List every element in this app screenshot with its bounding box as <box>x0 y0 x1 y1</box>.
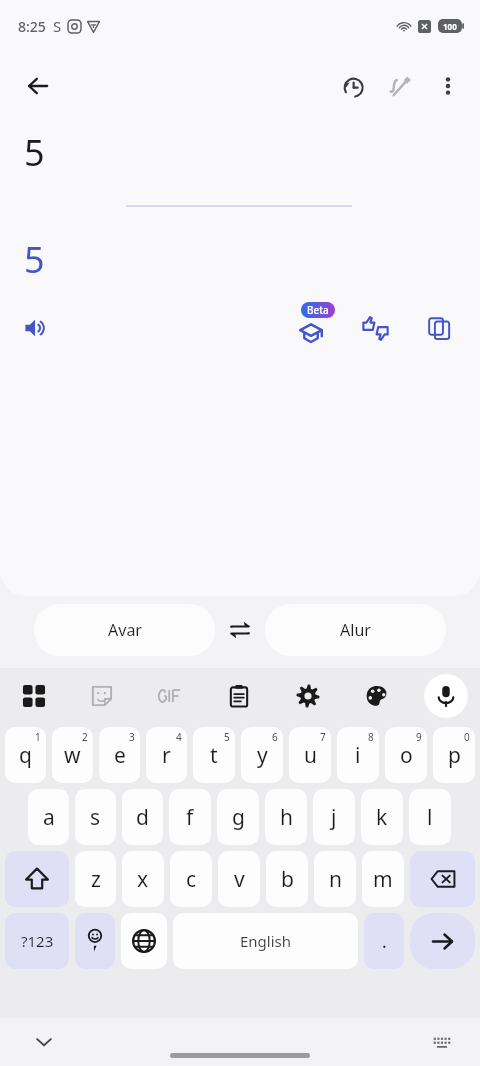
button[interactable]: Avar <box>34 604 215 656</box>
button[interactable]: Voice input <box>424 674 468 718</box>
button[interactable]: More options <box>424 62 472 110</box>
staticText: 1 <box>35 730 41 744</box>
staticText: . <box>382 930 387 953</box>
staticText: 5 <box>24 128 45 177</box>
staticText: 6 <box>272 730 278 744</box>
staticText: 5 <box>224 730 230 744</box>
button[interactable]: Listen <box>14 306 58 350</box>
button[interactable]: y <box>241 727 283 783</box>
button[interactable]: Stickers <box>68 668 136 724</box>
button[interactable]: English <box>173 913 358 969</box>
staticText: 2 <box>82 730 88 744</box>
staticText: 8 <box>368 730 374 744</box>
button[interactable]: Backspace <box>410 851 475 907</box>
button[interactable]: Enter <box>410 913 475 969</box>
button[interactable]: Handwriting <box>376 62 424 110</box>
button[interactable]: u <box>289 727 331 783</box>
staticText: s <box>90 803 101 832</box>
staticText: n <box>329 865 342 894</box>
staticText: q <box>19 741 32 770</box>
staticText: 3 <box>129 730 135 744</box>
staticText: u <box>304 741 317 770</box>
staticText: f <box>186 803 194 832</box>
staticText: p <box>448 741 461 770</box>
staticText: 100 <box>443 21 457 32</box>
button[interactable]: i <box>337 727 379 783</box>
staticText: ?123 <box>21 931 54 951</box>
button[interactable]: Clipboard <box>204 668 273 724</box>
button[interactable]: GIF <box>136 668 204 724</box>
button[interactable]: g <box>217 789 259 845</box>
button[interactable]: f <box>169 789 211 845</box>
staticText: z <box>91 865 101 894</box>
button[interactable]: Back <box>14 62 62 110</box>
staticText: S <box>53 16 62 36</box>
staticText: 4 <box>176 730 182 744</box>
button[interactable]: Emoji <box>75 913 115 969</box>
staticText: g <box>232 803 245 832</box>
button[interactable]: p <box>433 727 475 783</box>
staticText: t <box>210 741 218 770</box>
button[interactable]: b <box>266 851 308 907</box>
staticText: o <box>400 741 413 770</box>
button[interactable]: Settings <box>273 668 342 724</box>
button[interactable]: t <box>193 727 235 783</box>
staticText: c <box>186 865 197 894</box>
staticText: m <box>373 865 393 894</box>
button[interactable]: Themes <box>342 668 411 724</box>
button[interactable]: l <box>409 789 451 845</box>
button[interactable]: Apps <box>0 668 68 724</box>
staticText: k <box>376 803 388 832</box>
staticText: w <box>64 741 81 770</box>
button[interactable]: History <box>328 62 376 110</box>
button[interactable]: o <box>385 727 427 783</box>
staticText: a <box>43 803 55 832</box>
staticText: l <box>427 803 433 832</box>
staticText: 0 <box>464 730 470 744</box>
button[interactable]: Copy <box>416 305 462 351</box>
button[interactable]: Alur <box>265 604 446 656</box>
staticText: x <box>137 865 149 894</box>
staticText: 8:25 <box>18 17 46 36</box>
staticText: b <box>281 865 294 894</box>
staticText: h <box>280 803 293 832</box>
button[interactable]: Keyboard switcher <box>426 1026 458 1058</box>
button[interactable]: h <box>265 789 307 845</box>
staticText: y <box>257 741 268 770</box>
staticText: j <box>331 803 337 832</box>
staticText: 5 <box>24 235 45 284</box>
button[interactable]: d <box>122 789 163 845</box>
button[interactable]: w <box>52 727 93 783</box>
button[interactable]: e <box>99 727 140 783</box>
button[interactable]: Swap languages <box>215 604 265 656</box>
button[interactable]: a <box>28 789 69 845</box>
button[interactable]: ?123 <box>5 913 69 969</box>
staticText: English <box>240 931 292 951</box>
button[interactable]: m <box>362 851 404 907</box>
staticText: 9 <box>416 730 422 744</box>
staticText: v <box>234 865 245 894</box>
button[interactable]: s <box>75 789 116 845</box>
button[interactable]: j <box>313 789 355 845</box>
staticText: Avar <box>108 619 142 641</box>
button[interactable]: r <box>146 727 187 783</box>
staticText: i <box>355 741 361 770</box>
button[interactable]: q <box>5 727 46 783</box>
button[interactable]: x <box>122 851 164 907</box>
button[interactable]: Rate this translation <box>352 305 398 351</box>
button[interactable]: Practice <box>288 305 334 351</box>
staticText: 7 <box>320 730 326 744</box>
button[interactable]: . <box>364 913 404 969</box>
button[interactable]: n <box>314 851 356 907</box>
button[interactable]: k <box>361 789 403 845</box>
button[interactable]: Hide keyboard <box>26 1024 62 1060</box>
button[interactable]: Change language <box>121 913 167 969</box>
staticText: e <box>114 741 126 770</box>
button[interactable]: z <box>75 851 116 907</box>
staticText: r <box>162 741 171 770</box>
staticText: Beta <box>307 303 329 317</box>
staticText: Alur <box>340 619 371 641</box>
button[interactable]: v <box>218 851 260 907</box>
button[interactable]: Shift <box>5 851 69 907</box>
button[interactable]: c <box>170 851 212 907</box>
